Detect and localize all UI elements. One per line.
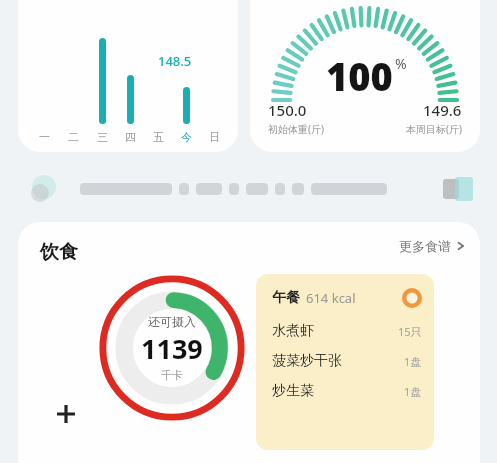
staticText: 148.5 — [158, 52, 192, 70]
staticText: 水煮虾 — [272, 322, 314, 340]
staticText: 五 — [153, 130, 164, 144]
button[interactable]: 100 — [250, 0, 480, 152]
staticText: 日 — [209, 130, 220, 144]
staticText: 午餐 — [272, 289, 300, 307]
button[interactable]: 添加饮食 — [46, 394, 86, 434]
staticText: 100 — [326, 50, 393, 102]
staticText: 614 kcal — [306, 289, 356, 307]
staticText: 更多食谱 — [399, 238, 451, 254]
staticText: 四 — [125, 130, 136, 144]
staticText: % — [395, 54, 407, 73]
staticText: 149.6 — [423, 100, 462, 120]
staticText: 1139 — [141, 330, 203, 367]
button[interactable]: 148.5 — [18, 0, 238, 152]
staticText: 千卡 — [161, 368, 183, 382]
staticText: 菠菜炒干张 — [272, 352, 342, 370]
staticText: 一 — [39, 130, 50, 144]
staticText: 初始体重(斤) — [268, 122, 324, 136]
staticText: 1盘 — [404, 384, 422, 399]
staticText: 15只 — [398, 324, 422, 339]
staticText: 炒生菜 — [272, 382, 314, 400]
staticText: 二 — [68, 130, 79, 144]
staticText: 本周目标(斤) — [406, 122, 462, 136]
staticText: 还可摄入 — [148, 314, 196, 329]
button[interactable]: 更多食谱 — [399, 238, 466, 254]
button[interactable]: 午餐 — [256, 274, 434, 450]
staticText: 150.0 — [268, 100, 307, 120]
staticText: 今 — [181, 130, 192, 144]
button[interactable] — [18, 160, 479, 218]
staticText: 饮食 — [40, 240, 78, 264]
staticText: 三 — [97, 130, 108, 144]
staticText: 1盘 — [404, 354, 422, 369]
button[interactable]: 还可摄入 — [96, 272, 248, 424]
